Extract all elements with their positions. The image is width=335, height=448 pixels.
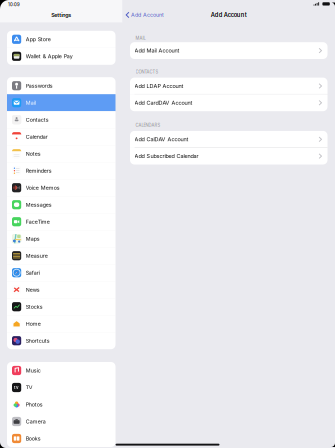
staticText: Calendar xyxy=(26,133,48,140)
staticText: News xyxy=(26,286,40,293)
button[interactable]: Stocks xyxy=(7,298,115,315)
button[interactable]: Add CalDAV Account xyxy=(130,131,327,148)
staticText: Safari xyxy=(26,269,40,276)
staticText: Home xyxy=(26,320,41,327)
button[interactable]: Add CardDAV Account xyxy=(130,94,327,111)
button[interactable]: tv xyxy=(7,379,115,396)
staticText: Wallet & Apple Pay xyxy=(26,53,73,60)
staticText: MAIL xyxy=(135,36,145,41)
button[interactable]: Music xyxy=(7,362,115,379)
staticText: tv xyxy=(14,385,19,390)
button[interactable]: Add Subscribed Calendar xyxy=(130,148,327,164)
staticText: Add CalDAV Account xyxy=(135,136,189,143)
button[interactable]: Shortcuts xyxy=(7,332,115,349)
button[interactable]: Reminders xyxy=(7,162,115,179)
staticText: Settings xyxy=(51,12,71,18)
staticText: Measure xyxy=(26,252,48,259)
button[interactable]: Camera xyxy=(7,413,115,430)
button[interactable]: Contacts xyxy=(7,111,115,128)
button[interactable]: Maps xyxy=(7,230,115,247)
staticText: TV xyxy=(26,384,33,391)
staticText: Camera xyxy=(26,418,46,425)
button[interactable]: Photos xyxy=(7,396,115,413)
staticText: Voice Memos xyxy=(26,184,60,191)
button[interactable]: Voice Memos xyxy=(7,179,115,196)
button[interactable]: Mail xyxy=(7,94,115,111)
staticText: App Store xyxy=(26,36,51,43)
staticText: Add Account xyxy=(211,11,247,18)
staticText: Add Subscribed Calendar xyxy=(135,153,199,159)
staticText: Add CardDAV Account xyxy=(135,99,193,106)
staticText: 10:09 xyxy=(8,2,20,7)
staticText: Passwords xyxy=(26,82,53,89)
staticText: CALENDARS xyxy=(135,123,160,128)
staticText: Add Account xyxy=(131,12,164,18)
button[interactable]: Wallet & Apple Pay xyxy=(7,48,115,65)
button[interactable]: Messages xyxy=(7,196,115,213)
button[interactable]: Add Mail Account xyxy=(130,42,327,59)
staticText: Books xyxy=(26,435,41,442)
staticText: Shortcuts xyxy=(26,337,50,344)
staticText: Messages xyxy=(26,201,52,208)
staticText: Mail xyxy=(26,99,36,106)
staticText: FaceTime xyxy=(26,218,50,225)
staticText: Stocks xyxy=(26,303,43,310)
staticText: Music xyxy=(26,367,41,374)
button[interactable]: Home xyxy=(7,315,115,332)
button[interactable]: Add LDAP Account xyxy=(130,78,327,94)
staticText: Add Mail Account xyxy=(135,47,180,54)
button[interactable]: App Store xyxy=(7,31,115,48)
button[interactable]: News xyxy=(7,281,115,298)
staticText: CONTACTS xyxy=(135,69,158,74)
staticText: Notes xyxy=(26,150,41,157)
button[interactable]: FaceTime xyxy=(7,213,115,230)
button[interactable]: Notes xyxy=(7,145,115,162)
button[interactable]: Measure xyxy=(7,247,115,264)
staticText: Maps xyxy=(26,235,40,242)
staticText: Reminders xyxy=(26,167,52,174)
button[interactable]: Add Account xyxy=(122,12,164,18)
button[interactable]: Passwords xyxy=(7,77,115,94)
button[interactable]: Safari xyxy=(7,264,115,281)
button[interactable]: Calendar xyxy=(7,128,115,145)
staticText: Photos xyxy=(26,401,43,408)
staticText: Add LDAP Account xyxy=(135,83,184,89)
button[interactable]: Books xyxy=(7,430,115,447)
staticText: Contacts xyxy=(26,116,49,123)
